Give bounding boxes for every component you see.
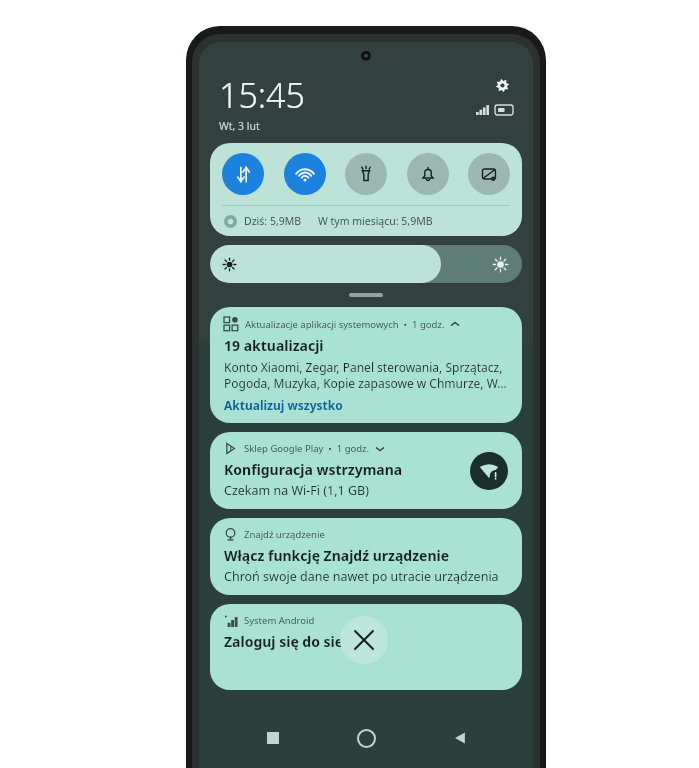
button[interactable]: System Android [210,604,522,690]
staticText: W tym miesiącu: 5,9MB [318,214,433,228]
staticText: Pogoda, Muzyka, Kopie zapasowe w Chmurze… [224,375,507,391]
button[interactable]: Wi-Fi [284,153,326,195]
staticText: Aktualizacje aplikacji systemowych • 1 g… [245,318,445,331]
button[interactable]: Dziś: 5,9MB [224,214,508,228]
staticText: Dziś: 5,9MB [244,214,302,228]
button[interactable]: Home [346,718,386,758]
staticText: Konfiguracja wstrzymana [224,460,403,479]
button[interactable]: Flashlight [345,153,387,195]
staticText: Zaloguj się do sieci [224,632,355,651]
staticText: Wt, 3 lut [219,119,260,133]
button[interactable]: Sklep Google Play • 1 godz. [210,432,522,509]
staticText: Czekam na Wi-Fi (1,1 GB) [224,482,369,499]
staticText: Sklep Google Play • 1 godz. [244,442,370,455]
button[interactable]: Recents [253,718,293,758]
staticText: Włącz funkcję Znajdź urządzenie [224,546,450,565]
staticText: Konto Xiaomi, Zegar, Panel sterowania, S… [224,359,503,375]
button[interactable]: Dismiss [340,616,388,664]
button[interactable]: Waiting for Wi-Fi [470,452,508,490]
button[interactable]: Mobile data [222,153,264,195]
staticText: Chroń swoje dane nawet po utracie urządz… [224,568,499,585]
button[interactable]: Aktualizacje aplikacji systemowych • 1 g… [210,307,522,423]
button[interactable]: Znajdź urządzenie [210,518,522,595]
staticText: Znajdź urządzenie [244,528,325,541]
staticText: 15:45 [219,72,305,118]
button[interactable]: Do not disturb [407,153,449,195]
button[interactable]: Aktualizuj wszystko [224,397,343,413]
staticText: System Android [244,614,315,627]
button[interactable]: Screenshot [468,153,510,195]
staticText: Aktualizuj wszystko [224,397,343,413]
staticText: 19 aktualizacji [224,336,324,355]
button[interactable]: Settings [489,72,515,98]
button[interactable]: Brightness [210,245,522,283]
button[interactable]: Back [440,718,480,758]
